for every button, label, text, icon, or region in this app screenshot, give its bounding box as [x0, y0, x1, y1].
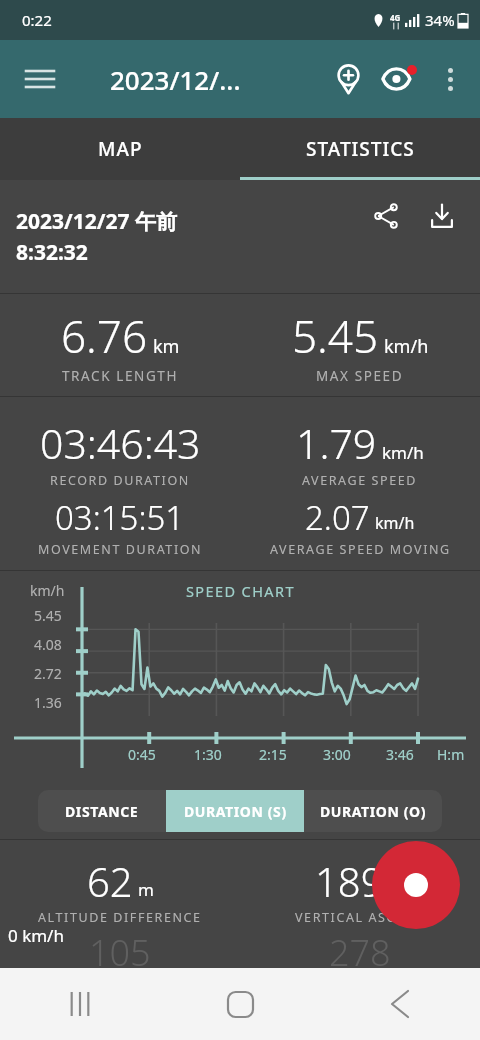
- staticText: DURATION (O): [320, 802, 427, 821]
- staticText: km/h: [30, 581, 65, 600]
- button[interactable]: DURATION (S): [166, 790, 304, 832]
- button[interactable]: Recent apps: [0, 968, 160, 1040]
- staticText: 1:30: [194, 745, 222, 764]
- staticText: 3:00: [323, 745, 351, 764]
- button[interactable]: Back: [320, 968, 480, 1040]
- staticText: 34%: [425, 10, 455, 30]
- staticText: m: [138, 878, 154, 901]
- staticText: 2023/12/...: [110, 62, 241, 97]
- button[interactable]: More options: [426, 55, 474, 103]
- staticText: 0:45: [128, 745, 156, 764]
- staticText: 5.45: [34, 606, 62, 625]
- button[interactable]: Share: [358, 188, 414, 244]
- staticText: 2.07: [305, 495, 370, 540]
- staticText: 6.76: [61, 306, 148, 366]
- staticText: m: [389, 878, 405, 901]
- button[interactable]: DURATION (O): [304, 790, 442, 832]
- staticText: 4.08: [34, 635, 62, 654]
- staticText: 2023/12/27 午前: [16, 207, 177, 236]
- staticText: 278: [329, 928, 391, 968]
- staticText: 0:22: [22, 10, 52, 30]
- staticText: 03:46:43: [40, 415, 201, 471]
- staticText: 3:46: [386, 745, 414, 764]
- staticText: RECORD DURATION: [50, 472, 190, 489]
- staticText: STATISTICS: [306, 136, 415, 162]
- staticText: MAX SPEED: [316, 367, 404, 385]
- staticText: DURATION (S): [184, 802, 287, 821]
- staticText: 105: [89, 928, 151, 968]
- button[interactable]: Visibility: [374, 53, 426, 105]
- staticText: SPEED CHART: [186, 581, 295, 601]
- staticText: ALTITUDE DIFFERENCE: [38, 909, 202, 926]
- staticText: AVERAGE SPEED MOVING: [270, 541, 451, 558]
- staticText: H:m: [437, 745, 465, 764]
- staticText: TRACK LENGTH: [62, 367, 179, 385]
- staticText: km/h: [382, 441, 424, 464]
- staticText: 2:15: [259, 745, 287, 764]
- staticText: MOVEMENT DURATION: [38, 541, 203, 558]
- staticText: km/h: [375, 512, 415, 534]
- staticText: 1.79: [296, 415, 377, 471]
- staticText: 03:15:51: [55, 495, 185, 540]
- staticText: 8:32:32: [16, 238, 88, 267]
- button[interactable]: MAP: [0, 118, 240, 180]
- button[interactable]: Add waypoint: [322, 53, 374, 105]
- staticText: VERTICAL ASCENT: [295, 909, 425, 926]
- staticText: 1.36: [34, 693, 62, 712]
- staticText: 62: [87, 854, 133, 908]
- staticText: 189: [315, 854, 384, 908]
- staticText: km/h: [384, 334, 429, 359]
- button[interactable]: Download: [414, 188, 470, 244]
- staticText: 4G: [390, 12, 401, 23]
- staticText: AVERAGE SPEED: [302, 472, 418, 489]
- staticText: DISTANCE: [65, 802, 139, 821]
- staticText: km: [153, 334, 180, 359]
- button[interactable]: Record: [372, 841, 460, 929]
- staticText: 2.72: [34, 664, 62, 683]
- button[interactable]: STATISTICS: [240, 118, 480, 180]
- button[interactable]: DISTANCE: [38, 790, 166, 832]
- staticText: 5.45: [292, 306, 379, 366]
- staticText: 0 km/h: [8, 924, 64, 947]
- button[interactable]: Home: [160, 968, 320, 1040]
- button[interactable]: Open navigation drawer: [14, 53, 66, 105]
- staticText: MAP: [98, 136, 143, 162]
